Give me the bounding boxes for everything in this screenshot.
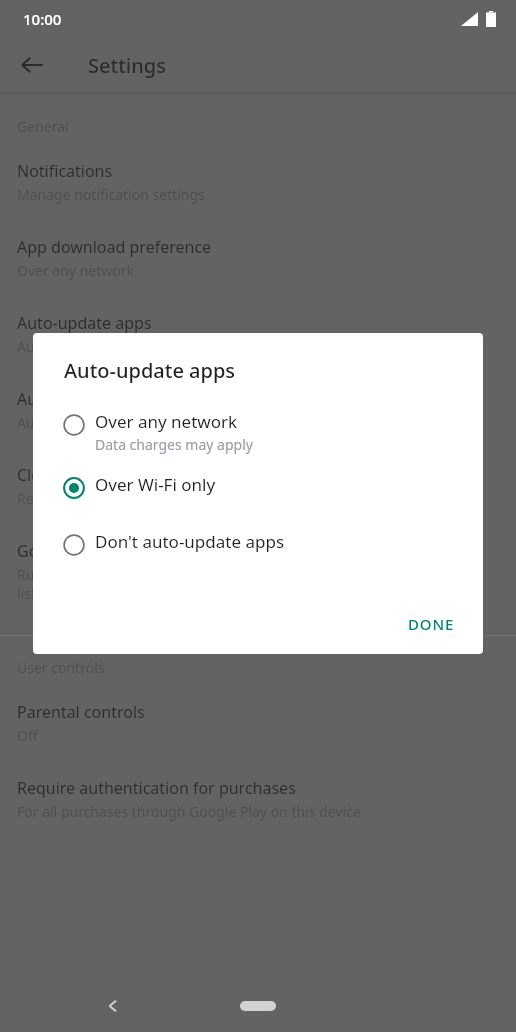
staticText: 10:00 xyxy=(23,9,62,29)
staticText: Settings xyxy=(88,52,166,79)
button[interactable]: DONE xyxy=(394,606,469,642)
staticText: Auto-update apps xyxy=(64,357,236,384)
button[interactable]: Back xyxy=(8,41,56,89)
staticText: lists xyxy=(17,584,43,603)
staticText: Auto-play videos xyxy=(17,388,142,410)
button[interactable]: Notifications xyxy=(0,144,516,220)
staticText: General xyxy=(17,117,69,136)
staticText: Over any network xyxy=(95,410,238,433)
staticText: Clear local search history xyxy=(17,464,205,486)
staticText: Data charges may apply xyxy=(95,435,253,454)
button[interactable]: Back xyxy=(90,983,136,1029)
button[interactable]: Over any network xyxy=(33,410,483,473)
staticText: Run apps instantly from search results a… xyxy=(17,565,327,584)
button[interactable]: Google Play Instant xyxy=(0,524,516,619)
button[interactable]: Auto-play videos xyxy=(0,372,516,448)
staticText: Over any network xyxy=(17,261,134,280)
button[interactable]: Parental controls xyxy=(0,685,516,761)
staticText: Notifications xyxy=(17,160,113,182)
staticText: User controls xyxy=(17,658,105,677)
button[interactable]: Home xyxy=(240,1001,276,1011)
staticText: Manage notification settings xyxy=(17,185,205,204)
staticText: Require authentication for purchases xyxy=(17,777,296,799)
staticText: Parental controls xyxy=(17,701,145,723)
button[interactable]: Auto-update apps xyxy=(0,296,516,372)
staticText: Off xyxy=(17,726,38,745)
button[interactable]: Over Wi-Fi only xyxy=(33,473,483,530)
staticText: Remove searches you have performed on th… xyxy=(17,489,363,508)
button[interactable]: Don't auto-update apps xyxy=(33,530,483,580)
staticText: Over Wi-Fi only xyxy=(95,473,216,496)
staticText: Auto-update apps xyxy=(17,312,152,334)
staticText: App download preference xyxy=(17,236,212,258)
staticText: DONE xyxy=(408,614,455,634)
staticText: For all purchases through Google Play on… xyxy=(17,802,361,821)
staticText: Google Play Instant xyxy=(17,540,164,562)
button[interactable]: App download preference xyxy=(0,220,516,296)
button[interactable]: Clear local search history xyxy=(0,448,516,524)
staticText: Don't auto-update apps xyxy=(95,530,285,553)
staticText: Auto-update apps over Wi-Fi only xyxy=(17,337,235,356)
button[interactable]: Require authentication for purchases xyxy=(0,761,516,837)
staticText: Auto-play videos over Wi-Fi only xyxy=(17,413,226,432)
